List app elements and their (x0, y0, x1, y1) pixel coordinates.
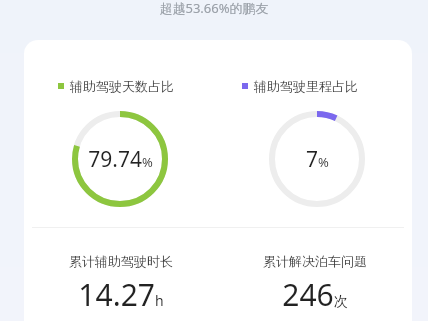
button[interactable]: 累计辅助驾驶时长 (24, 253, 218, 315)
button[interactable]: 辅助驾驶天数占比 (24, 40, 412, 321)
staticText: 7% (306, 145, 329, 174)
button[interactable]: 累计解决泊车问题 (218, 253, 412, 315)
button[interactable]: 辅助驾驶天数占比 (58, 78, 218, 94)
staticText: 246次 (282, 274, 348, 315)
staticText: 79.74% (88, 145, 153, 174)
staticText: 累计辅助驾驶时长 (69, 253, 173, 269)
staticText: 14.27h (78, 274, 164, 315)
button[interactable]: 辅助驾驶里程占比 (242, 78, 412, 94)
staticText: 辅助驾驶天数占比 (70, 78, 174, 94)
staticText: 辅助驾驶里程占比 (254, 78, 358, 94)
staticText: 超越53.66%的鹏友 (159, 0, 269, 17)
staticText: 累计解决泊车问题 (263, 253, 367, 269)
